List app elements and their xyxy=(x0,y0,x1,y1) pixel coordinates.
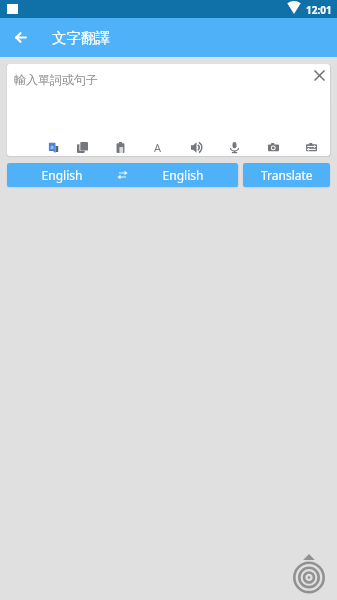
button[interactable]: Translate xyxy=(243,163,330,187)
button[interactable]: Voice input xyxy=(221,134,247,156)
button[interactable]: Speak xyxy=(183,134,209,156)
button[interactable]: Camera xyxy=(260,134,286,156)
staticText: 文字翻譯 xyxy=(52,29,110,47)
staticText: English xyxy=(7,167,117,183)
button[interactable]: English xyxy=(7,163,238,187)
button[interactable]: Translate xyxy=(40,134,66,156)
button[interactable]: Pick image xyxy=(298,134,324,156)
staticText: 12:01 xyxy=(306,3,332,17)
staticText: A xyxy=(154,140,162,155)
button[interactable]: Copy xyxy=(69,134,95,156)
button[interactable]: Text size xyxy=(145,134,171,156)
button[interactable]: Clear xyxy=(309,64,330,85)
staticText: 輸入單詞或句子 xyxy=(14,72,98,87)
staticText: Translate xyxy=(261,167,313,183)
button[interactable]: Paste xyxy=(107,134,133,156)
staticText: English xyxy=(128,167,238,183)
button[interactable]: Back xyxy=(8,30,33,45)
